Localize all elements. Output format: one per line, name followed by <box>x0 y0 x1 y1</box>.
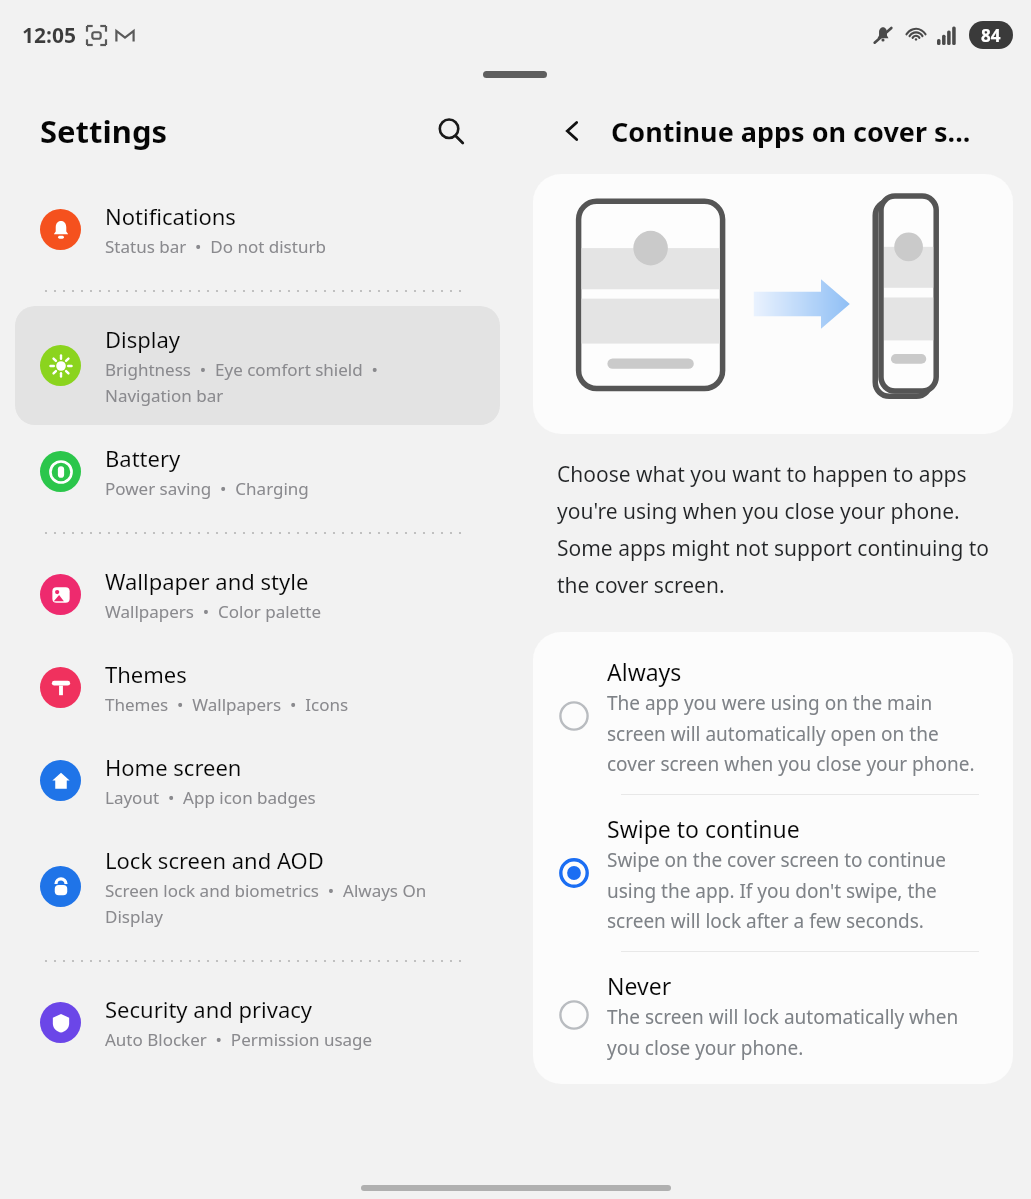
staticText: Screen lock and biometrics • Always On D… <box>105 879 427 928</box>
staticText: Swipe to continue <box>607 813 800 844</box>
button[interactable]: Back <box>549 108 595 154</box>
staticText: Themes • Wallpapers • Icons <box>105 693 349 716</box>
staticText: Settings <box>40 110 168 152</box>
staticText: Display <box>105 324 181 354</box>
staticText: Wallpaper and style <box>105 566 309 596</box>
staticText: Choose what you want to happen to apps y… <box>557 460 1009 599</box>
staticText: Status bar • Do not disturb <box>105 235 326 258</box>
button[interactable]: Wallpaper and style <box>0 548 515 641</box>
button[interactable]: Display <box>15 306 500 425</box>
staticText: Lock screen and AOD <box>105 845 324 875</box>
staticText: 84 <box>981 24 1001 47</box>
staticText: The screen will lock automatically when … <box>607 1004 989 1060</box>
staticText: Layout • App icon badges <box>105 786 316 809</box>
staticText: Swipe on the cover screen to continue us… <box>607 847 989 933</box>
staticText: Auto Blocker • Permission usage <box>105 1028 373 1051</box>
staticText: The app you were using on the main scree… <box>607 690 989 776</box>
button[interactable]: Lock screen and AOD <box>0 827 515 946</box>
button[interactable]: Themes <box>0 641 515 734</box>
staticText: Always <box>607 656 682 687</box>
button[interactable]: Battery <box>0 425 515 518</box>
button[interactable]: Always <box>533 638 1013 794</box>
staticText: 12:05 <box>22 21 76 50</box>
button[interactable]: Home screen <box>0 734 515 827</box>
button[interactable]: Swipe to continue <box>533 795 1013 951</box>
button[interactable]: Never <box>533 952 1013 1078</box>
staticText: Never <box>607 970 672 1001</box>
staticText: Home screen <box>105 752 242 782</box>
button[interactable]: Security and privacy <box>0 976 515 1069</box>
button[interactable]: Search <box>427 107 475 155</box>
staticText: Notifications <box>105 201 236 231</box>
staticText: Battery <box>105 443 181 473</box>
button[interactable]: Notifications <box>0 183 515 276</box>
staticText: Wallpapers • Color palette <box>105 600 322 623</box>
staticText: Themes <box>105 659 187 689</box>
staticText: Power saving • Charging <box>105 477 309 500</box>
staticText: Security and privacy <box>105 994 313 1024</box>
staticText: Brightness • Eye comfort shield • Naviga… <box>105 358 378 407</box>
staticText: Continue apps on cover s... <box>611 113 971 150</box>
